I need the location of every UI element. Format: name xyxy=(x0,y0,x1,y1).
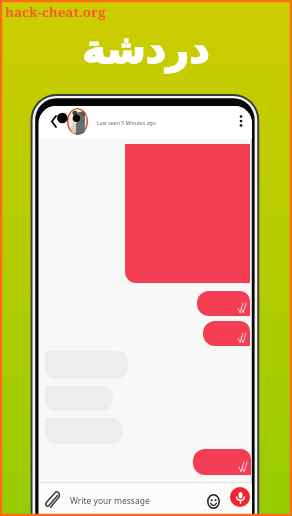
staticText: Last seen 5 Minutes ago xyxy=(97,119,156,126)
button[interactable]: Attach file xyxy=(41,488,63,512)
staticText: Write your message xyxy=(70,495,150,507)
button[interactable]: Contact photo xyxy=(67,108,88,135)
button[interactable]: Back xyxy=(45,111,62,132)
button[interactable]: More options xyxy=(233,110,249,132)
button[interactable]: Record voice message xyxy=(230,487,250,507)
staticText: دردشة xyxy=(0,26,292,73)
staticText: hack-cheat.org xyxy=(5,3,106,21)
button[interactable]: Emoji xyxy=(205,492,222,510)
